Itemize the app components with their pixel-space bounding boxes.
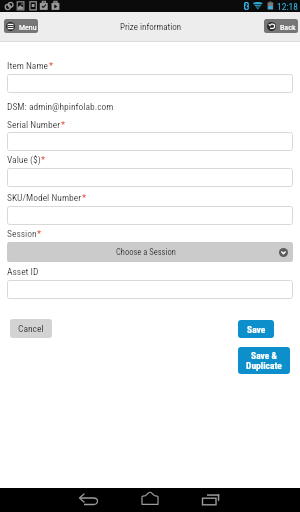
staticText: Serial Number [7, 119, 61, 130]
button[interactable]: Recent apps [190, 488, 230, 512]
staticText: DSM: admin@hpinfolab.com [7, 101, 114, 112]
button[interactable]: Home [130, 488, 170, 512]
staticText: Save & Duplicate [246, 350, 282, 372]
staticText: Asset ID [7, 266, 39, 277]
button[interactable]: Choose a Session [7, 242, 293, 262]
staticText: Prize information [120, 22, 182, 33]
button[interactable]: Menu [4, 19, 38, 33]
staticText: Session [7, 228, 37, 239]
button[interactable]: Save & Duplicate [238, 347, 290, 374]
staticText: * [41, 154, 46, 165]
staticText: Save [247, 324, 266, 335]
button[interactable]: Back [70, 488, 110, 512]
staticText: Item Name [7, 60, 49, 71]
staticText: Value ($) [7, 154, 41, 165]
button[interactable]: Cancel [10, 319, 52, 338]
button[interactable]: Back [264, 19, 298, 33]
button[interactable] [7, 168, 293, 187]
staticText: * [37, 228, 42, 239]
button[interactable] [7, 206, 293, 225]
button[interactable]: Save [238, 320, 274, 338]
button[interactable] [7, 280, 293, 299]
staticText: Back [280, 23, 296, 32]
staticText: * [49, 60, 54, 71]
staticText: 12:18 [277, 1, 298, 12]
button[interactable] [7, 74, 293, 93]
staticText: Cancel [18, 323, 44, 334]
staticText: SKU/Model Number [7, 192, 82, 203]
staticText: * [82, 192, 87, 203]
staticText: * [61, 119, 66, 130]
staticText: Choose a Session [116, 247, 176, 257]
button[interactable] [7, 132, 293, 151]
staticText: Menu [19, 23, 37, 32]
